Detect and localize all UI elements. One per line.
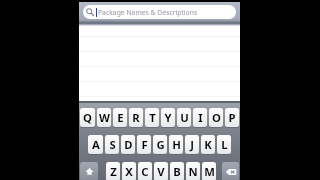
button[interactable]: L	[217, 135, 231, 154]
button[interactable]: X	[122, 162, 136, 180]
staticText: O	[212, 110, 221, 125]
staticText: M	[204, 164, 215, 179]
button[interactable]: T	[145, 108, 159, 127]
button[interactable]: Package Names & Descriptions	[83, 5, 236, 19]
staticText: D	[124, 137, 133, 152]
staticText: L	[221, 137, 228, 152]
staticText: Z	[110, 164, 117, 179]
staticText: Package Names & Descriptions	[98, 8, 198, 17]
button[interactable]: C	[138, 162, 152, 180]
button[interactable]: S	[105, 135, 119, 154]
staticText: R	[132, 110, 140, 125]
button[interactable]: Shift	[80, 162, 98, 180]
staticText: W	[99, 110, 110, 125]
staticText: I	[198, 110, 203, 125]
staticText: B	[173, 164, 181, 179]
staticText: F	[141, 137, 148, 152]
button[interactable]: Q	[80, 108, 95, 127]
button[interactable]: Z	[106, 162, 120, 180]
button[interactable]: H	[169, 135, 183, 154]
button[interactable]: U	[177, 108, 191, 127]
staticText: T	[149, 110, 156, 125]
staticText: J	[190, 137, 194, 152]
staticText: P	[228, 110, 236, 125]
staticText: Q	[83, 110, 92, 125]
button[interactable]: N	[186, 162, 200, 180]
button[interactable]: E	[113, 108, 127, 127]
button[interactable]: J	[185, 135, 199, 154]
button[interactable]: Y	[161, 108, 175, 127]
staticText: A	[92, 137, 100, 152]
staticText: G	[156, 137, 165, 152]
button[interactable]: I	[193, 108, 207, 127]
button[interactable]: V	[154, 162, 168, 180]
staticText: V	[157, 164, 165, 179]
staticText: Y	[164, 110, 172, 125]
button[interactable]: D	[121, 135, 135, 154]
staticText: X	[125, 164, 133, 179]
button[interactable]: W	[97, 108, 111, 127]
button[interactable]: Backspace	[222, 162, 239, 180]
button[interactable]: F	[137, 135, 151, 154]
staticText: S	[109, 137, 116, 152]
button[interactable]: P	[225, 108, 239, 127]
button[interactable]: R	[129, 108, 143, 127]
button[interactable]: B	[170, 162, 184, 180]
staticText: E	[117, 110, 124, 125]
staticText: H	[172, 137, 181, 152]
staticText: K	[204, 137, 212, 152]
staticText: U	[180, 110, 189, 125]
button[interactable]: K	[201, 135, 215, 154]
button[interactable]: A	[88, 135, 103, 154]
button[interactable]: O	[209, 108, 223, 127]
button[interactable]: G	[153, 135, 167, 154]
staticText: N	[188, 164, 198, 179]
staticText: C	[141, 164, 149, 179]
button[interactable]: M	[202, 162, 216, 180]
